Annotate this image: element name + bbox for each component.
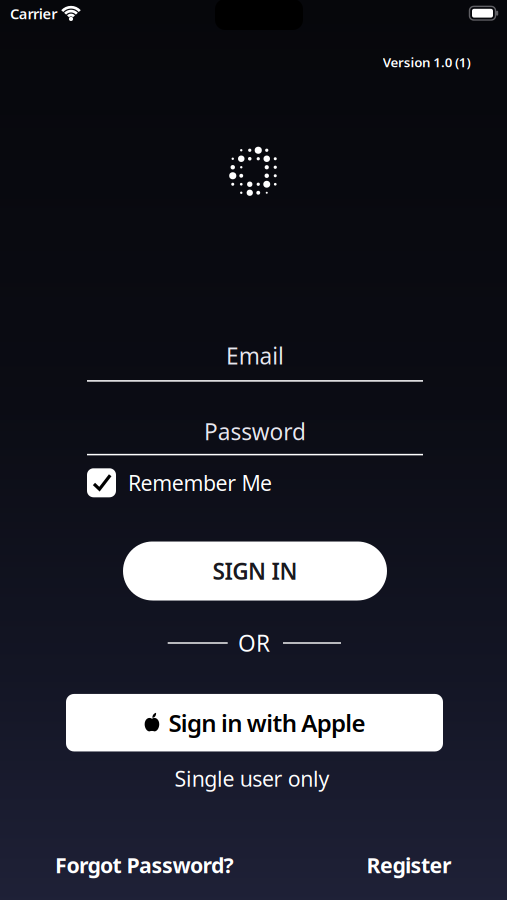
button[interactable]: Password [87,409,423,459]
staticText: Password [204,416,306,446]
staticText: Email [226,341,284,371]
staticText: Register [366,851,452,879]
button[interactable]: Sign in with Apple [66,694,443,751]
staticText: SIGN IN [213,556,297,586]
staticText: Sign in with Apple [168,707,366,739]
button[interactable]: Register [292,851,452,879]
staticText: Version 1.0 (1) [383,53,470,71]
button[interactable]: Remember Me [87,468,423,497]
staticText: Remember Me [128,469,272,497]
staticText: Forgot Password? [55,851,233,879]
staticText: Carrier [10,4,57,23]
staticText: OR [238,628,270,658]
button[interactable]: Email [87,335,423,385]
button[interactable]: Forgot Password? [55,851,275,879]
button[interactable]: SIGN IN [123,541,387,600]
staticText: Single user only [174,764,329,793]
